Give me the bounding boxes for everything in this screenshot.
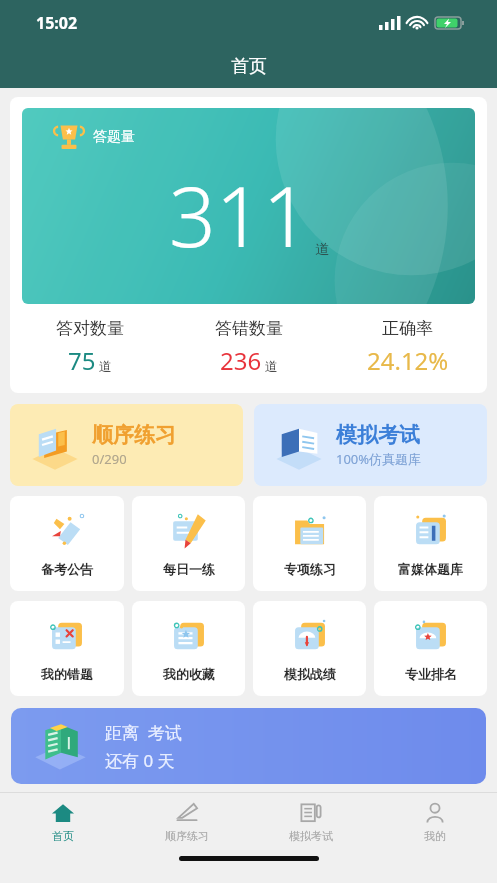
staticText: 15:02 [36, 12, 78, 34]
staticText: 答错数量 [215, 318, 283, 339]
staticText: 备考公告 [41, 561, 93, 577]
staticText: 专业排名 [405, 666, 457, 682]
staticText: 首页 [231, 55, 267, 78]
button[interactable]: 顺序练习 [125, 793, 249, 851]
button[interactable]: 我的错题 [10, 601, 124, 696]
button[interactable]: 顺序练习 [10, 404, 243, 486]
staticText: 100%仿真题库 [336, 450, 422, 468]
button[interactable]: 我的收藏 [132, 601, 245, 696]
staticText: 道 [265, 358, 278, 374]
button[interactable]: 答对数量 [10, 318, 169, 377]
button[interactable]: 首页 [0, 793, 125, 851]
button[interactable]: 模拟战绩 [253, 601, 366, 696]
staticText: 311 [169, 159, 310, 271]
staticText: 道 [99, 358, 112, 374]
button[interactable]: 专业排名 [374, 601, 487, 696]
button[interactable]: 我的 [373, 793, 497, 851]
staticText: 富媒体题库 [398, 561, 463, 577]
staticText: 我的 [424, 829, 446, 843]
staticText: 75 [68, 344, 96, 377]
button[interactable]: 模拟考试 [254, 404, 487, 486]
staticText: 正确率 [382, 318, 433, 339]
staticText: 顺序练习 [92, 422, 176, 448]
button[interactable]: 富媒体题库 [374, 496, 487, 591]
staticText: 道 [315, 241, 329, 259]
staticText: 24.12% [367, 344, 449, 377]
button[interactable]: 专项练习 [253, 496, 366, 591]
button[interactable]: 每日一练 [132, 496, 245, 591]
staticText: 我的收藏 [163, 666, 215, 682]
staticText: 专项练习 [284, 561, 336, 577]
staticText: 236 [220, 344, 262, 377]
staticText: 模拟考试 [289, 829, 333, 843]
staticText: 答对数量 [56, 318, 124, 339]
button[interactable]: 备考公告 [10, 496, 124, 591]
button[interactable]: 答错数量 [169, 318, 328, 377]
staticText: 顺序练习 [165, 829, 209, 843]
button[interactable]: 模拟考试 [249, 793, 373, 851]
staticText: 距离 考试 [105, 721, 182, 744]
staticText: 每日一练 [163, 561, 215, 577]
staticText: 答题量 [93, 128, 135, 146]
staticText: 模拟考试 [336, 422, 420, 448]
staticText: 还有 0 天 [105, 749, 175, 772]
button[interactable]: 正确率 [328, 318, 487, 377]
staticText: 我的错题 [41, 666, 93, 682]
staticText: 0/290 [92, 450, 127, 468]
staticText: 模拟战绩 [284, 666, 336, 682]
button[interactable]: 距离 考试 [11, 708, 486, 784]
staticText: 首页 [52, 829, 74, 843]
